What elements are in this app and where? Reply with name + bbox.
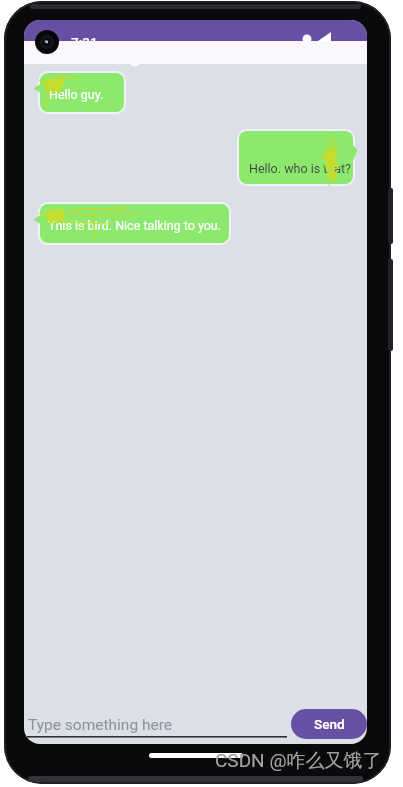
staticText: 7:31	[71, 34, 98, 50]
button[interactable]: Type something here	[28, 716, 173, 734]
button[interactable]	[40, 204, 229, 243]
staticText: Send	[314, 716, 345, 732]
button[interactable]: Send	[291, 709, 367, 739]
staticText: Hello guy.	[49, 87, 104, 102]
button[interactable]	[239, 131, 353, 184]
staticText: This is bird. Nice talking to you.	[48, 218, 222, 233]
button[interactable]	[40, 73, 124, 112]
staticText: Hello. who is that?	[249, 161, 352, 176]
staticText: CSDN @咋么又饿了	[215, 749, 382, 773]
